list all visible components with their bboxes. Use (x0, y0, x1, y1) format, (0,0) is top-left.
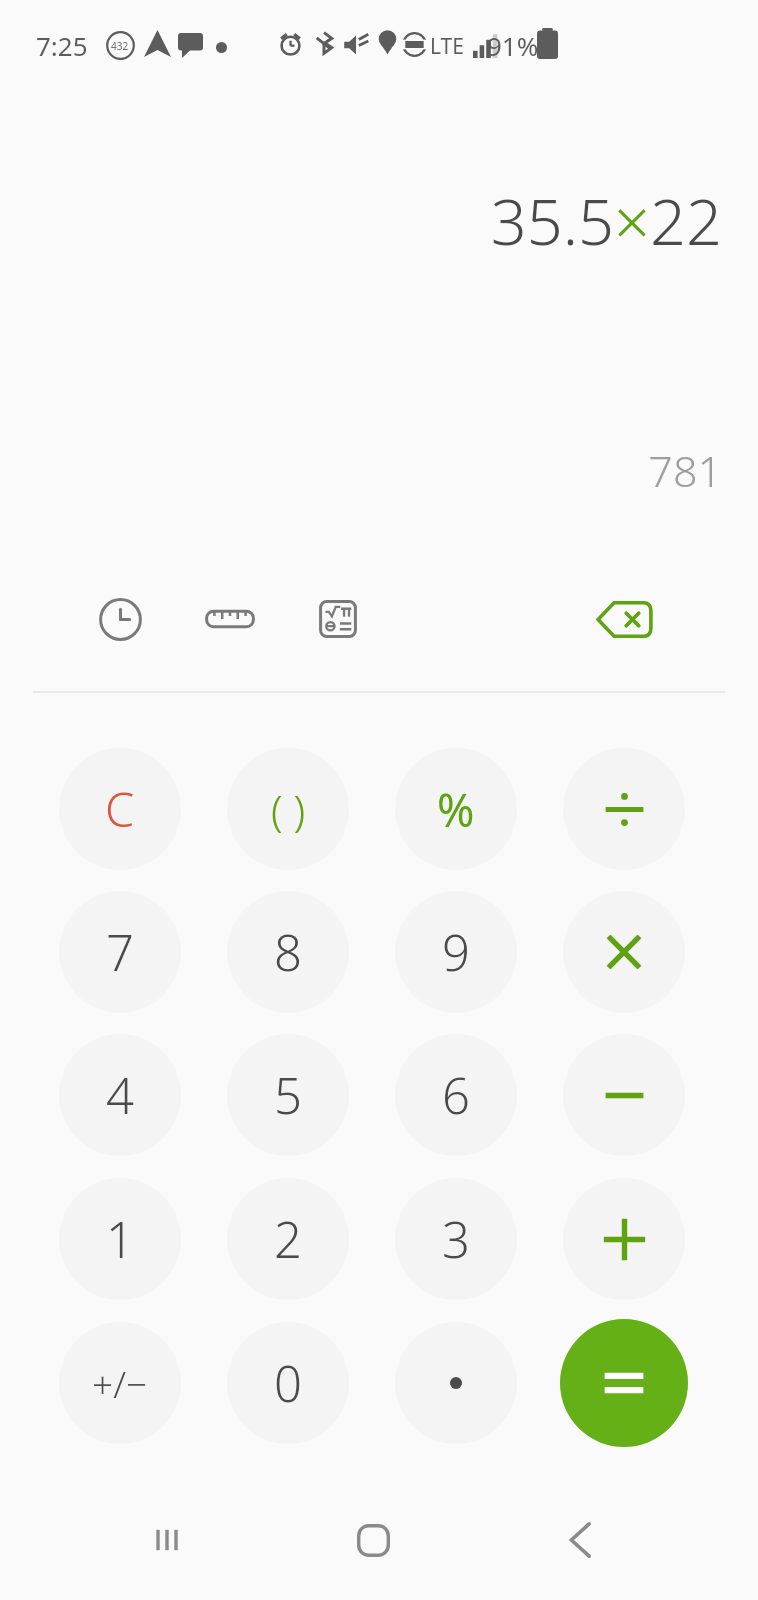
staticText: 35.5×22 (0, 178, 722, 264)
staticText: 7:25 (36, 28, 88, 63)
staticText: 8 (274, 919, 302, 986)
staticText: 6 (442, 1062, 470, 1129)
button[interactable]: Home (328, 1495, 418, 1585)
staticText: 9 (442, 919, 470, 986)
staticText: 781 (0, 441, 722, 500)
staticText: LTE (430, 32, 464, 61)
button[interactable]: C (59, 748, 181, 870)
button[interactable]: Unit converter (192, 581, 268, 657)
button[interactable]: % (395, 748, 517, 870)
button[interactable] (563, 1178, 685, 1300)
button[interactable]: 7 (59, 891, 181, 1013)
staticText: 1 (106, 1206, 134, 1273)
button[interactable]: 8 (227, 891, 349, 1013)
staticText: 91% (487, 28, 539, 63)
staticText: 432 (111, 39, 129, 53)
staticText: 3 (442, 1206, 470, 1273)
button[interactable]: Recents (122, 1495, 212, 1585)
staticText: 4 (106, 1062, 134, 1129)
button[interactable] (560, 1319, 688, 1447)
button[interactable]: 5 (227, 1034, 349, 1156)
button[interactable]: 2 (227, 1178, 349, 1300)
button[interactable] (395, 1322, 517, 1444)
button[interactable]: Scientific calculator (300, 581, 376, 657)
button[interactable]: 9 (395, 891, 517, 1013)
button[interactable] (563, 1034, 685, 1156)
button[interactable] (563, 891, 685, 1013)
button[interactable] (563, 748, 685, 870)
staticText: 2 (274, 1206, 302, 1273)
button[interactable]: 4 (59, 1034, 181, 1156)
button[interactable]: Back (536, 1495, 626, 1585)
button[interactable]: 0 (227, 1322, 349, 1444)
staticText: % (437, 779, 475, 840)
staticText: ( ) (271, 781, 306, 838)
staticText: 5 (274, 1062, 302, 1129)
button[interactable]: 1 (59, 1178, 181, 1300)
staticText: C (105, 777, 135, 841)
staticText: 0 (274, 1350, 302, 1417)
button[interactable]: 6 (395, 1034, 517, 1156)
staticText: +/− (92, 1358, 148, 1408)
button[interactable]: ( ) (227, 748, 349, 870)
staticText: 7 (106, 919, 134, 986)
button[interactable]: Backspace (586, 581, 662, 657)
button[interactable]: 3 (395, 1178, 517, 1300)
button[interactable]: +/− (59, 1322, 181, 1444)
button[interactable]: History (82, 581, 158, 657)
